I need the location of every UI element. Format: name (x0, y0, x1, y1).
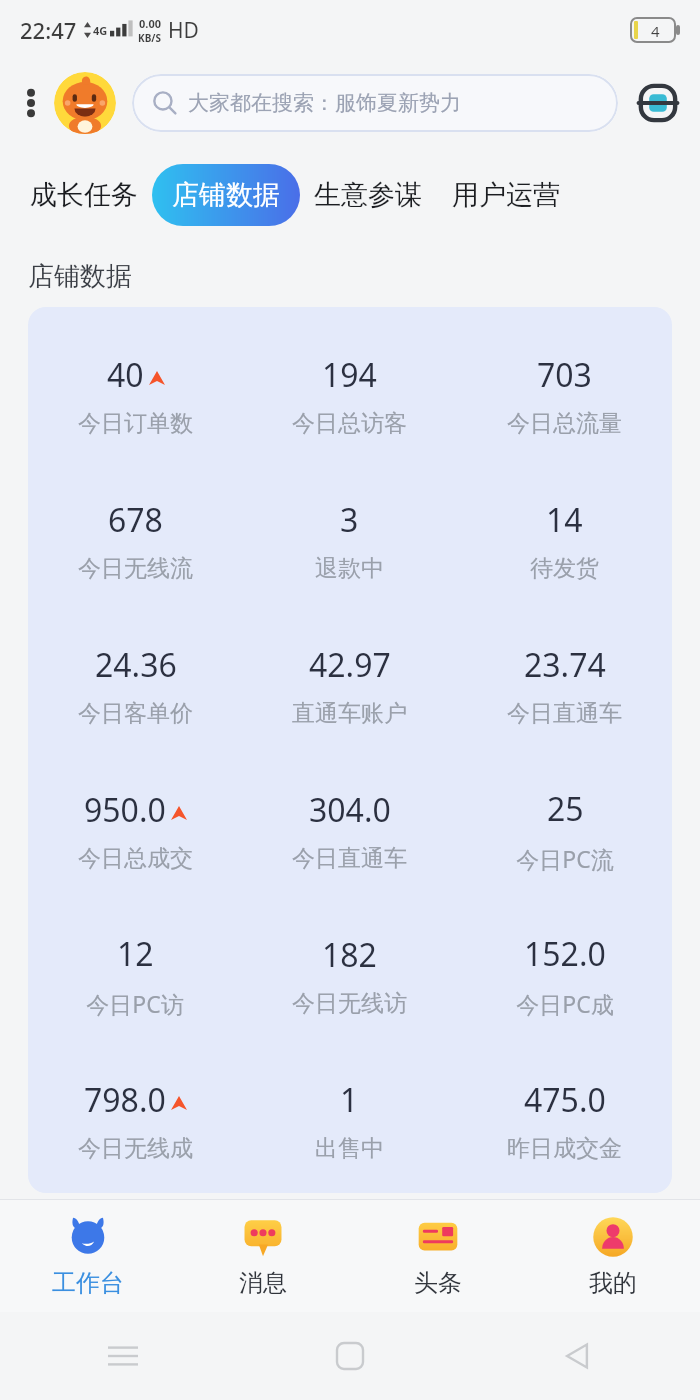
staticText: 店铺数据 (172, 178, 280, 212)
button[interactable]: 194 (242, 323, 457, 468)
staticText: 退款中 (315, 554, 384, 583)
staticText: 今日直通车 (507, 699, 622, 728)
staticText: 152.0 (524, 932, 606, 976)
button[interactable]: 店铺数据 (152, 164, 300, 226)
staticText: 昨日成交金 (507, 1134, 622, 1163)
button[interactable]: Back (554, 1333, 600, 1379)
staticText: 194 (322, 353, 377, 397)
button[interactable]: 工作台 (0, 1200, 175, 1312)
button[interactable]: 475.0 (457, 1048, 672, 1193)
button[interactable]: 40 (28, 323, 242, 468)
button[interactable]: 成长任务 (26, 164, 142, 226)
staticText: 待发货 (530, 554, 599, 583)
button[interactable]: 大家都在搜索：服饰夏新势力 (132, 74, 618, 132)
staticText: 678 (108, 498, 163, 542)
button[interactable]: 14 (457, 468, 672, 613)
button[interactable]: 42.97 (242, 613, 457, 758)
staticText: 14 (546, 498, 583, 542)
button[interactable]: 头条 (350, 1200, 525, 1312)
staticText: 4G (93, 23, 108, 38)
button[interactable]: Recent apps (100, 1333, 146, 1379)
button[interactable]: 3 (242, 468, 457, 613)
staticText: 生意参谋 (314, 178, 422, 212)
staticText: 1 (340, 1078, 359, 1122)
staticText: 12 (117, 932, 154, 976)
staticText: 我的 (589, 1268, 637, 1298)
staticText: 24.36 (95, 643, 177, 687)
staticText: 今日总访客 (292, 409, 407, 438)
button[interactable]: 678 (28, 468, 242, 613)
staticText: 今日PC流 (516, 843, 614, 874)
staticText: 成长任务 (30, 178, 138, 212)
button[interactable]: Home (327, 1333, 373, 1379)
button[interactable]: 消息 (175, 1200, 350, 1312)
button[interactable]: Scan code (632, 77, 684, 129)
button[interactable]: 182 (242, 903, 457, 1048)
button[interactable]: 25 (457, 758, 672, 903)
staticText: 工作台 (52, 1268, 124, 1298)
button[interactable]: 24.36 (28, 613, 242, 758)
staticText: 今日PC访 (86, 988, 184, 1019)
staticText: 大家都在搜索：服饰夏新势力 (188, 90, 461, 116)
staticText: 3 (340, 498, 359, 542)
button[interactable]: Profile avatar (54, 72, 116, 134)
staticText: 950.0 (84, 788, 166, 832)
staticText: 703 (537, 353, 592, 397)
button[interactable]: More options (16, 88, 46, 118)
staticText: 475.0 (524, 1078, 606, 1122)
staticText: 40 (107, 353, 144, 397)
staticText: 304.0 (309, 788, 391, 832)
staticText: 22:47 (20, 15, 77, 45)
staticText: 25 (547, 787, 584, 831)
staticText: 今日订单数 (78, 409, 193, 438)
staticText: 用户运营 (452, 178, 560, 212)
button[interactable]: 用户运营 (448, 164, 564, 226)
staticText: 今日客单价 (78, 699, 193, 728)
button[interactable]: 304.0 (242, 758, 457, 903)
button[interactable]: 23.74 (457, 613, 672, 758)
button[interactable]: 152.0 (457, 903, 672, 1048)
staticText: 直通车账户 (292, 699, 407, 728)
staticText: 今日无线成 (78, 1134, 193, 1163)
staticText: 0.00 (139, 16, 161, 31)
staticText: 42.97 (309, 643, 391, 687)
staticText: 4 (651, 21, 660, 39)
button[interactable]: 生意参谋 (310, 164, 426, 226)
staticText: 店铺数据 (28, 260, 132, 293)
button[interactable]: 1 (242, 1048, 457, 1193)
staticText: 出售中 (315, 1134, 384, 1163)
staticText: HD (168, 16, 199, 45)
button[interactable]: 12 (28, 903, 242, 1048)
button[interactable]: 703 (457, 323, 672, 468)
staticText: 今日无线访 (292, 989, 407, 1018)
staticText: 消息 (239, 1268, 287, 1298)
button[interactable]: 798.0 (28, 1048, 242, 1193)
staticText: 今日总流量 (507, 409, 622, 438)
button[interactable]: 我的 (525, 1200, 700, 1312)
staticText: KB/S (138, 31, 161, 45)
staticText: 今日无线流 (78, 554, 193, 583)
staticText: 182 (322, 933, 377, 977)
button[interactable]: 950.0 (28, 758, 242, 903)
staticText: 今日直通车 (292, 844, 407, 873)
staticText: 今日总成交 (78, 844, 193, 873)
staticText: 23.74 (524, 643, 606, 687)
staticText: 今日PC成 (516, 988, 614, 1019)
staticText: 头条 (414, 1268, 462, 1298)
staticText: 798.0 (84, 1078, 166, 1122)
